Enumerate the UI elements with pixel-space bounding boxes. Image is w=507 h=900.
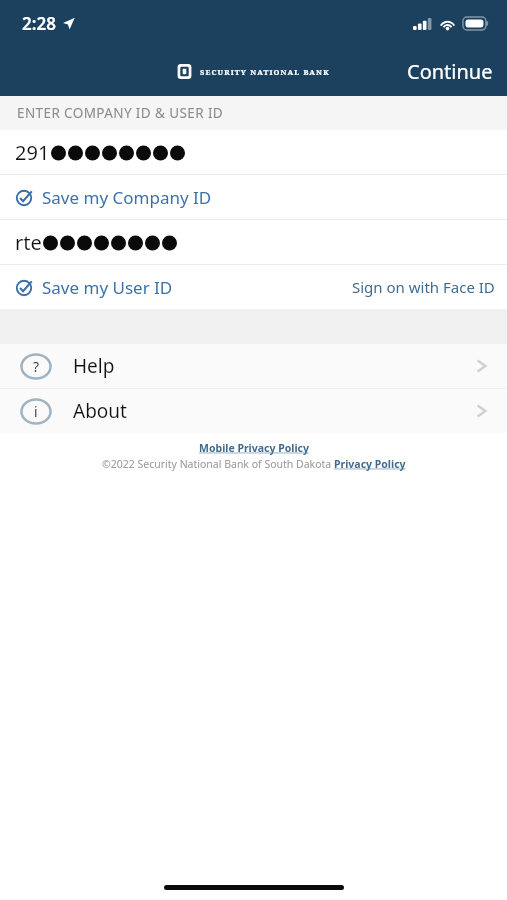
staticText: Save my Company ID <box>42 186 212 209</box>
staticText: Help <box>73 353 115 379</box>
other: Help <box>476 357 507 375</box>
staticText: Continue <box>407 58 493 85</box>
staticText: Sign on with Face ID <box>352 277 495 297</box>
staticText: About <box>73 398 127 424</box>
other: About <box>476 402 507 420</box>
button[interactable]: rte <box>0 220 507 264</box>
staticText: i <box>34 402 38 421</box>
button[interactable]: Continue <box>393 50 507 93</box>
staticText: rte <box>15 229 42 256</box>
staticText: ? <box>33 357 40 376</box>
button[interactable]: ? <box>0 344 507 388</box>
button[interactable]: Mobile Privacy Policy <box>199 441 309 455</box>
button[interactable]: Save my Company ID <box>0 180 222 215</box>
button[interactable]: 291 <box>0 130 507 174</box>
button[interactable]: Privacy Policy <box>334 457 406 471</box>
button[interactable]: Sign on with Face ID <box>340 269 507 305</box>
staticText: Save my User ID <box>42 276 173 299</box>
button[interactable]: Save my User ID <box>0 270 183 305</box>
staticText: ©2022 Security National Bank of South Da… <box>102 457 334 471</box>
staticText: SECURITY NATIONAL BANK <box>200 67 330 77</box>
staticText: 2:28 <box>22 12 56 35</box>
staticText: ENTER COMPANY ID & USER ID <box>17 104 224 122</box>
button[interactable]: i <box>0 389 507 433</box>
staticText: 291 <box>15 139 50 166</box>
